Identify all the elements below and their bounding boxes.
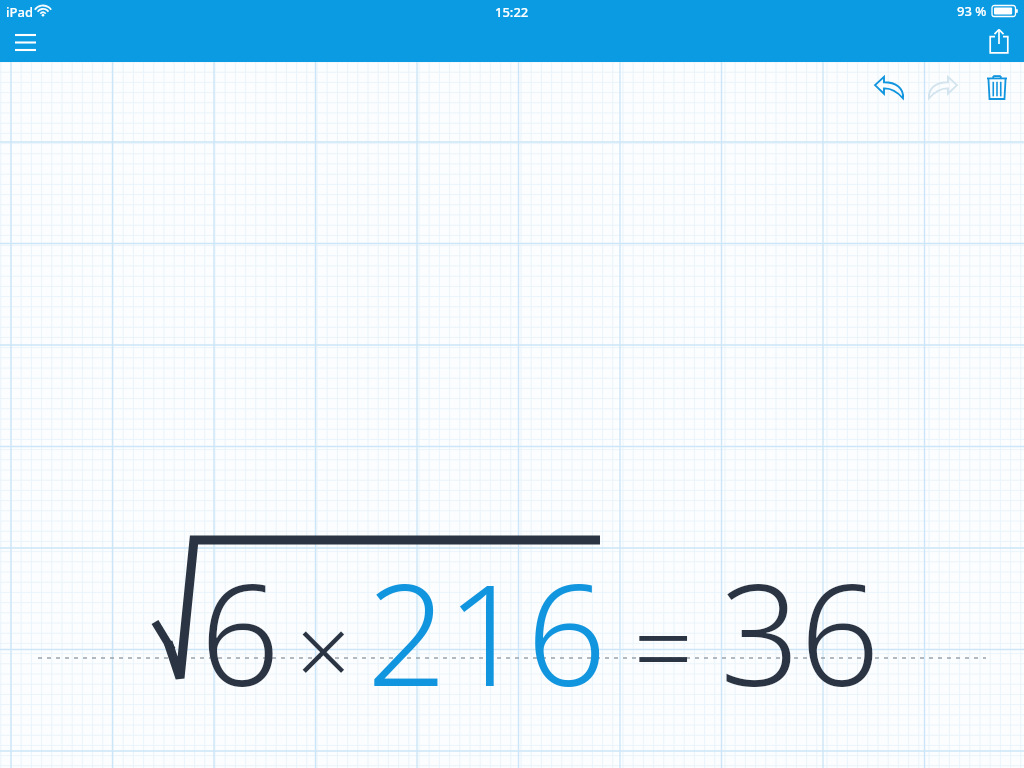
staticText: 6 × 216 = 36: [200, 536, 880, 727]
button[interactable]: Redo: [916, 62, 970, 112]
button[interactable]: Delete: [970, 62, 1024, 112]
button[interactable]: Menu: [2, 22, 48, 62]
staticText: iPad: [6, 3, 33, 21]
button[interactable]: Share: [976, 20, 1022, 62]
staticText: 93 %: [957, 2, 987, 20]
button[interactable]: Undo: [862, 62, 916, 112]
staticText: 15:22: [495, 3, 529, 21]
